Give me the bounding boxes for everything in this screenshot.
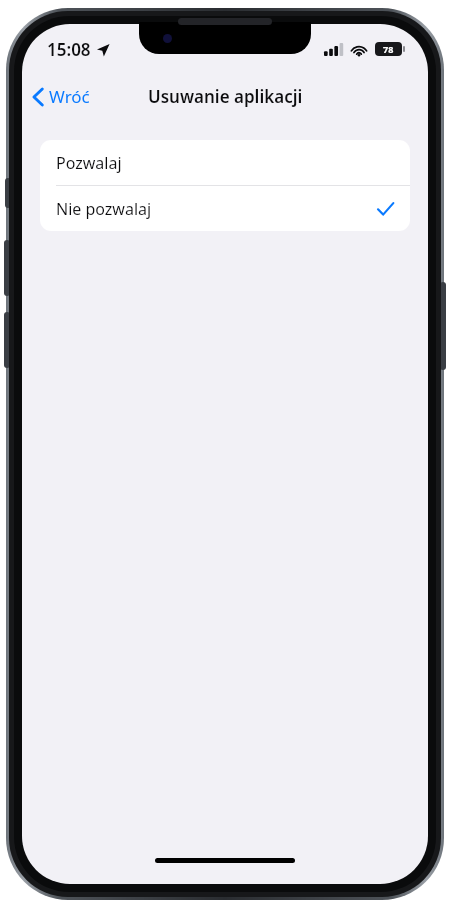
button[interactable]: Wróć [22,79,100,114]
staticText: Wróć [49,85,90,108]
staticText: 15:08 [47,38,91,61]
button[interactable]: Nie pozwalaj [40,186,410,231]
button[interactable]: Pozwalaj [40,140,410,186]
staticText: 78 [383,43,394,55]
staticText: Usuwanie aplikacji [148,85,303,108]
staticText: Pozwalaj [56,152,122,174]
staticText: Nie pozwalaj [56,198,152,220]
